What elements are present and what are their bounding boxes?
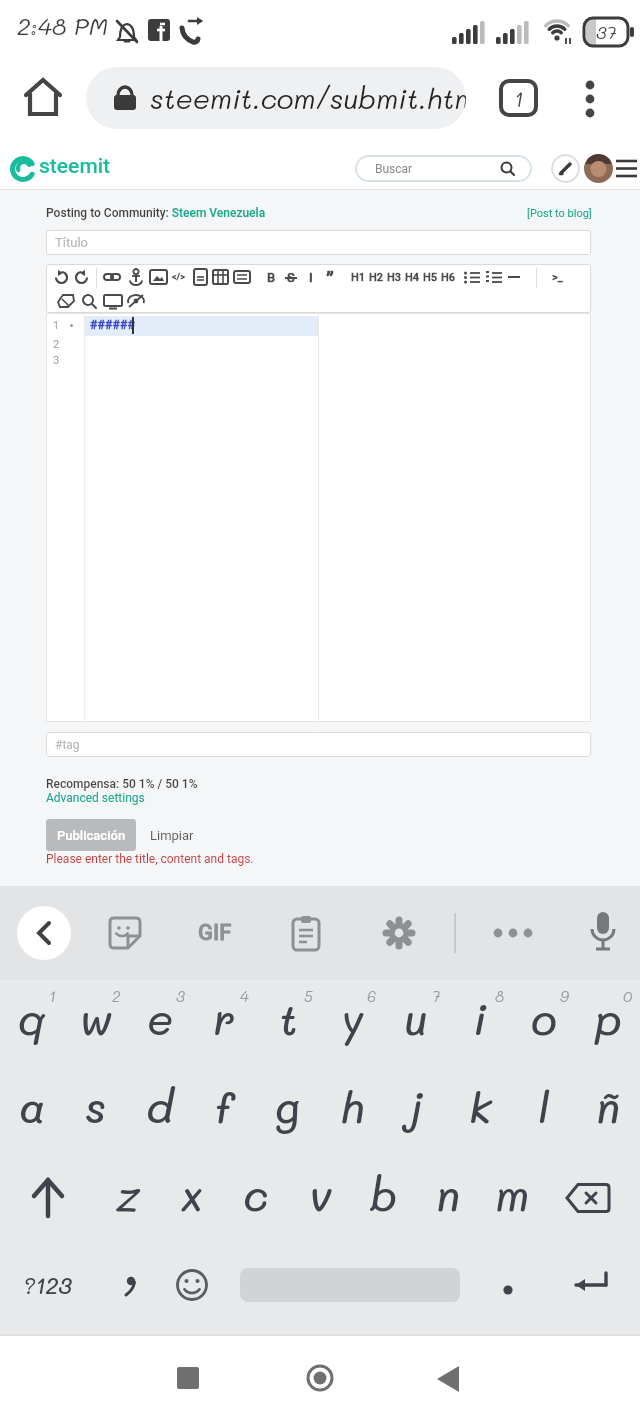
button[interactable]: Buscar (355, 155, 532, 182)
button[interactable]: o (512, 987, 576, 1049)
button[interactable] (486, 271, 502, 284)
button[interactable]: H2 (367, 269, 385, 285)
button[interactable]: m (480, 1163, 544, 1225)
button[interactable]: e (128, 987, 192, 1049)
button[interactable]: j (384, 1075, 448, 1137)
button[interactable]: H5 (421, 269, 439, 285)
button[interactable]: H1 (349, 269, 367, 285)
button[interactable] (566, 1183, 610, 1213)
button[interactable] (30, 1178, 66, 1218)
button[interactable] (540, 17, 578, 47)
button[interactable]: Título (46, 230, 591, 255)
button[interactable] (177, 16, 207, 46)
button[interactable]: 5 (296, 984, 320, 1006)
button[interactable] (213, 270, 228, 284)
button[interactable]: b (352, 1163, 416, 1225)
button[interactable]: s (64, 1075, 128, 1137)
button[interactable]: I (304, 269, 318, 285)
button[interactable]: Limpiar (147, 819, 197, 851)
button[interactable]: n (416, 1163, 480, 1225)
button[interactable] (54, 270, 69, 285)
button[interactable] (306, 1364, 334, 1392)
button[interactable]: ?123 (12, 1261, 82, 1309)
button[interactable]: [Post to blog] (520, 206, 592, 221)
button[interactable]: 6 (360, 984, 384, 1006)
button[interactable] (122, 1276, 138, 1298)
button[interactable]: 0 (616, 984, 640, 1006)
button[interactable]: Publicación (46, 819, 136, 851)
button[interactable] (502, 1284, 514, 1296)
button[interactable] (176, 1269, 208, 1301)
button[interactable]: i (448, 987, 512, 1049)
button[interactable]: l (512, 1075, 576, 1137)
button[interactable] (177, 1367, 199, 1389)
button[interactable] (452, 20, 492, 46)
button[interactable] (17, 906, 71, 960)
button[interactable]: u (384, 987, 448, 1049)
button[interactable] (129, 269, 143, 286)
button[interactable]: w (64, 987, 128, 1049)
button[interactable] (114, 17, 142, 45)
button[interactable] (148, 19, 170, 41)
button[interactable] (616, 159, 637, 178)
button[interactable] (82, 294, 97, 309)
button[interactable]: steemit.com/submit.htm (86, 67, 466, 129)
button[interactable]: k (448, 1075, 512, 1137)
button[interactable]: r (192, 987, 256, 1049)
button[interactable]: h (320, 1075, 384, 1137)
button[interactable]: H6 (439, 269, 457, 285)
button[interactable]: p (576, 987, 640, 1049)
button[interactable]: #tag (46, 732, 591, 757)
button[interactable]: 7 (424, 984, 448, 1006)
button[interactable] (464, 271, 480, 284)
button[interactable]: v (288, 1163, 352, 1225)
button[interactable] (584, 154, 613, 183)
button[interactable]: ” (321, 267, 339, 287)
button[interactable] (24, 77, 62, 117)
button[interactable]: 3 (168, 984, 192, 1006)
button[interactable]: y (320, 987, 384, 1049)
button[interactable] (150, 270, 167, 284)
button[interactable]: c (224, 1163, 288, 1225)
button[interactable] (436, 1366, 460, 1392)
button[interactable]: 1 (40, 984, 64, 1006)
button[interactable]: 2 (104, 984, 128, 1006)
button[interactable]: 1 (499, 79, 538, 117)
button[interactable] (110, 918, 140, 948)
button[interactable]: 4 (232, 984, 256, 1006)
button[interactable] (584, 18, 634, 47)
button[interactable] (551, 154, 580, 183)
button[interactable]: H4 (403, 269, 421, 285)
button[interactable] (104, 271, 120, 284)
button[interactable]: q (0, 987, 64, 1049)
button[interactable] (382, 916, 416, 950)
button[interactable]: GIF (185, 914, 245, 952)
button[interactable]: B (263, 269, 279, 285)
button[interactable] (127, 295, 145, 308)
button[interactable]: z (96, 1163, 160, 1225)
button[interactable] (492, 928, 536, 938)
button[interactable] (104, 295, 122, 309)
button[interactable] (74, 270, 89, 285)
button[interactable] (584, 80, 596, 118)
button[interactable]: S (283, 269, 299, 285)
button[interactable] (10, 156, 36, 182)
button[interactable]: </> (168, 269, 188, 285)
button[interactable]: 8 (488, 984, 512, 1006)
button[interactable] (588, 912, 618, 954)
button[interactable] (293, 916, 321, 950)
button[interactable]: t (256, 987, 320, 1049)
button[interactable] (568, 1268, 610, 1302)
button[interactable] (234, 271, 250, 283)
button[interactable]: 9 (552, 984, 576, 1006)
button[interactable]: a (0, 1075, 64, 1137)
button[interactable]: Posting to Community: Steem Venezuela (46, 206, 266, 220)
button[interactable]: >_ (546, 269, 568, 285)
button[interactable]: 1 (46, 313, 591, 722)
button[interactable]: x (160, 1163, 224, 1225)
button[interactable]: f (192, 1075, 256, 1137)
button[interactable]: H3 (385, 269, 403, 285)
button[interactable] (496, 20, 536, 46)
